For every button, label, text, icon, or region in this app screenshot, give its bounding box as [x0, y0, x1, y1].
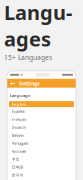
- staticText: Languages: [4, 0, 72, 52]
- button[interactable]: Español: [7, 107, 76, 115]
- staticText: 한국어: [11, 173, 23, 178]
- button[interactable]: Français: [7, 115, 76, 123]
- button[interactable]: 日本語: [7, 163, 76, 171]
- staticText: Português: [11, 140, 28, 146]
- staticText: Italiano: [11, 132, 23, 138]
- staticText: Language: [10, 93, 30, 98]
- staticText: 15+ Languages: [4, 53, 52, 62]
- button[interactable]: English: [9, 101, 74, 107]
- button[interactable]: Português: [7, 139, 76, 147]
- staticText: English: [11, 101, 26, 107]
- button[interactable]: Italiano: [7, 131, 76, 139]
- button[interactable]: Русский: [7, 147, 76, 155]
- staticText: 日本語: [11, 165, 23, 170]
- button[interactable]: ←: [7, 79, 76, 88]
- staticText: Deutsch: [11, 124, 25, 130]
- staticText: Settings: [19, 80, 40, 87]
- staticText: Français: [11, 116, 26, 122]
- staticText: Español: [11, 108, 24, 114]
- staticText: Русский: [11, 148, 25, 154]
- button[interactable]: 中文: [7, 155, 76, 163]
- button[interactable]: Deutsch: [7, 123, 76, 131]
- staticText: ←: [10, 79, 16, 87]
- staticText: 中文: [11, 157, 19, 162]
- button[interactable]: 한국어: [7, 171, 76, 179]
